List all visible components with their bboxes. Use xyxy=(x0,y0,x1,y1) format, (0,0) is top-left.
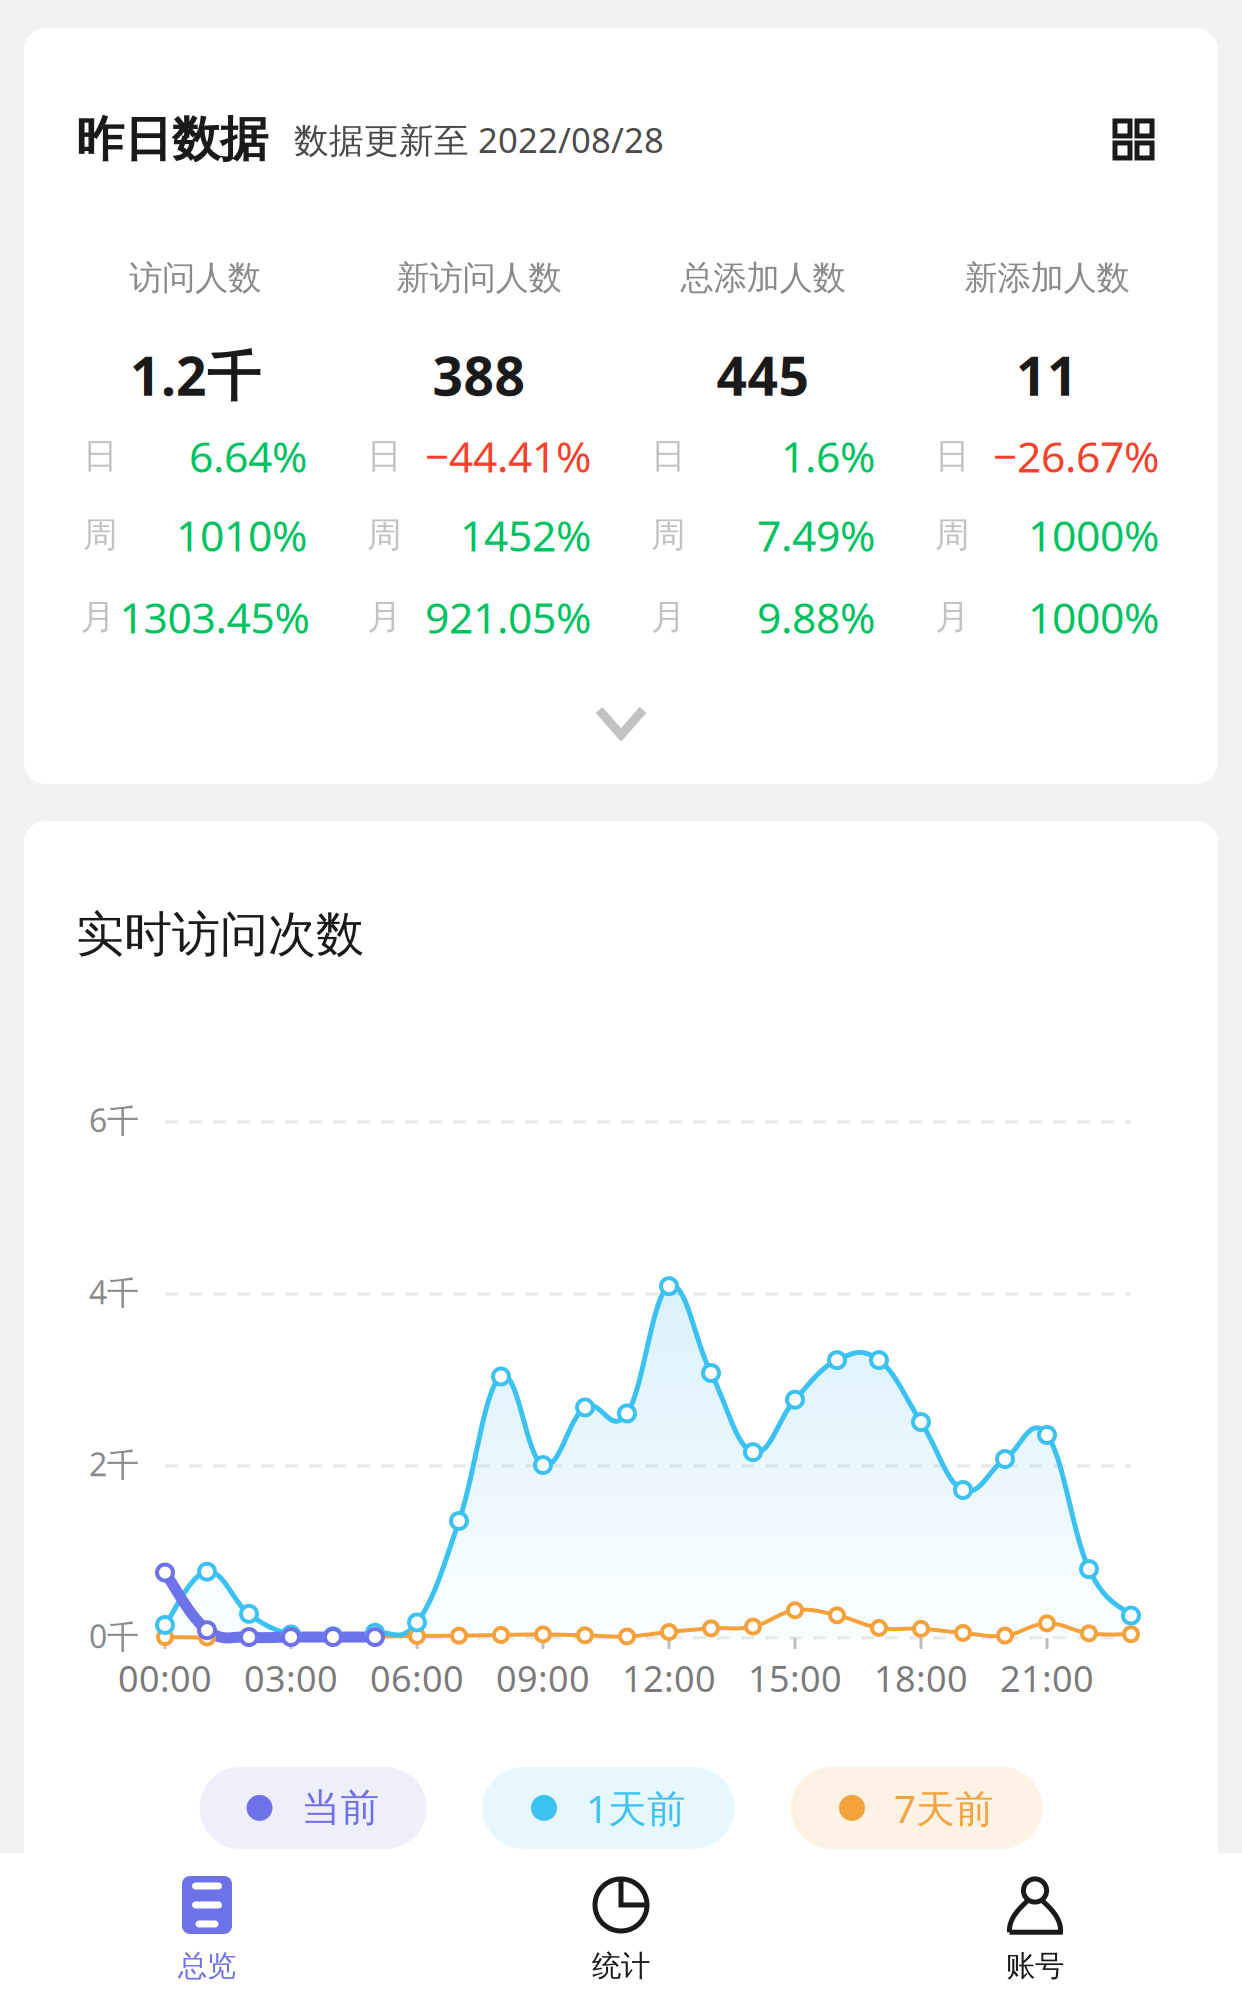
button[interactable]: 7天前 xyxy=(790,1767,1042,1849)
staticText: 总添加人数 xyxy=(680,257,845,298)
staticText: 921.05% xyxy=(425,589,591,645)
staticText: 当前 xyxy=(301,1784,379,1832)
staticText: 12:00 xyxy=(622,1654,716,1702)
staticText: 6.64% xyxy=(189,428,307,484)
button[interactable]: Switch layout xyxy=(1105,111,1162,168)
staticText: 日 xyxy=(651,435,686,477)
staticText: 0千 xyxy=(89,1615,139,1657)
staticText: 数据更新至 2022/08/28 xyxy=(294,116,664,162)
staticText: 月 xyxy=(651,596,686,638)
staticText: 月 xyxy=(367,596,402,638)
staticText: 2千 xyxy=(89,1443,139,1485)
staticText: 月 xyxy=(935,596,970,638)
button[interactable]: 当前 xyxy=(199,1767,426,1849)
staticText: 1.2千 xyxy=(130,339,260,410)
staticText: 03:00 xyxy=(244,1654,338,1702)
staticText: 1010% xyxy=(176,507,307,563)
staticText: 11 xyxy=(1016,339,1078,410)
staticText: −26.67% xyxy=(993,428,1159,484)
staticText: 7天前 xyxy=(894,1782,994,1833)
staticText: 09:00 xyxy=(496,1654,590,1702)
staticText: 00:00 xyxy=(118,1654,212,1702)
button[interactable]: 账号 xyxy=(828,1876,1242,1984)
staticText: 21:00 xyxy=(1000,1654,1094,1702)
staticText: 1452% xyxy=(460,507,591,563)
staticText: 06:00 xyxy=(370,1654,464,1702)
staticText: 周 xyxy=(83,514,118,556)
staticText: 月 xyxy=(80,596,115,638)
staticText: 新访问人数 xyxy=(396,257,561,298)
staticText: 1.6% xyxy=(781,428,875,484)
staticText: 日 xyxy=(367,435,402,477)
button[interactable]: 1天前 xyxy=(482,1767,734,1849)
staticText: 9.88% xyxy=(757,589,875,645)
staticText: 1000% xyxy=(1028,507,1159,563)
staticText: 新添加人数 xyxy=(964,257,1129,298)
staticText: 日 xyxy=(83,435,118,477)
staticText: 周 xyxy=(935,514,970,556)
staticText: 7.49% xyxy=(757,507,875,563)
staticText: 访问人数 xyxy=(129,257,261,298)
button[interactable]: Expand xyxy=(585,696,657,749)
staticText: 1303.45% xyxy=(119,589,309,645)
staticText: 1天前 xyxy=(586,1782,686,1833)
staticText: 18:00 xyxy=(874,1654,968,1702)
staticText: 388 xyxy=(432,339,525,410)
staticText: −44.41% xyxy=(425,428,591,484)
staticText: 6千 xyxy=(89,1099,139,1141)
staticText: 统计 xyxy=(592,1948,650,1984)
staticText: 445 xyxy=(716,339,809,410)
staticText: 总览 xyxy=(178,1948,236,1984)
staticText: 周 xyxy=(651,514,686,556)
staticText: 4千 xyxy=(89,1271,139,1313)
staticText: 15:00 xyxy=(748,1654,842,1702)
staticText: 实时访问次数 xyxy=(76,905,364,964)
staticText: 日 xyxy=(935,435,970,477)
button[interactable]: 总览 xyxy=(0,1876,414,1984)
staticText: 账号 xyxy=(1006,1948,1064,1984)
staticText: 昨日数据 xyxy=(76,110,268,169)
staticText: 1000% xyxy=(1028,589,1159,645)
staticText: 周 xyxy=(367,514,402,556)
button[interactable]: 统计 xyxy=(414,1876,828,1984)
